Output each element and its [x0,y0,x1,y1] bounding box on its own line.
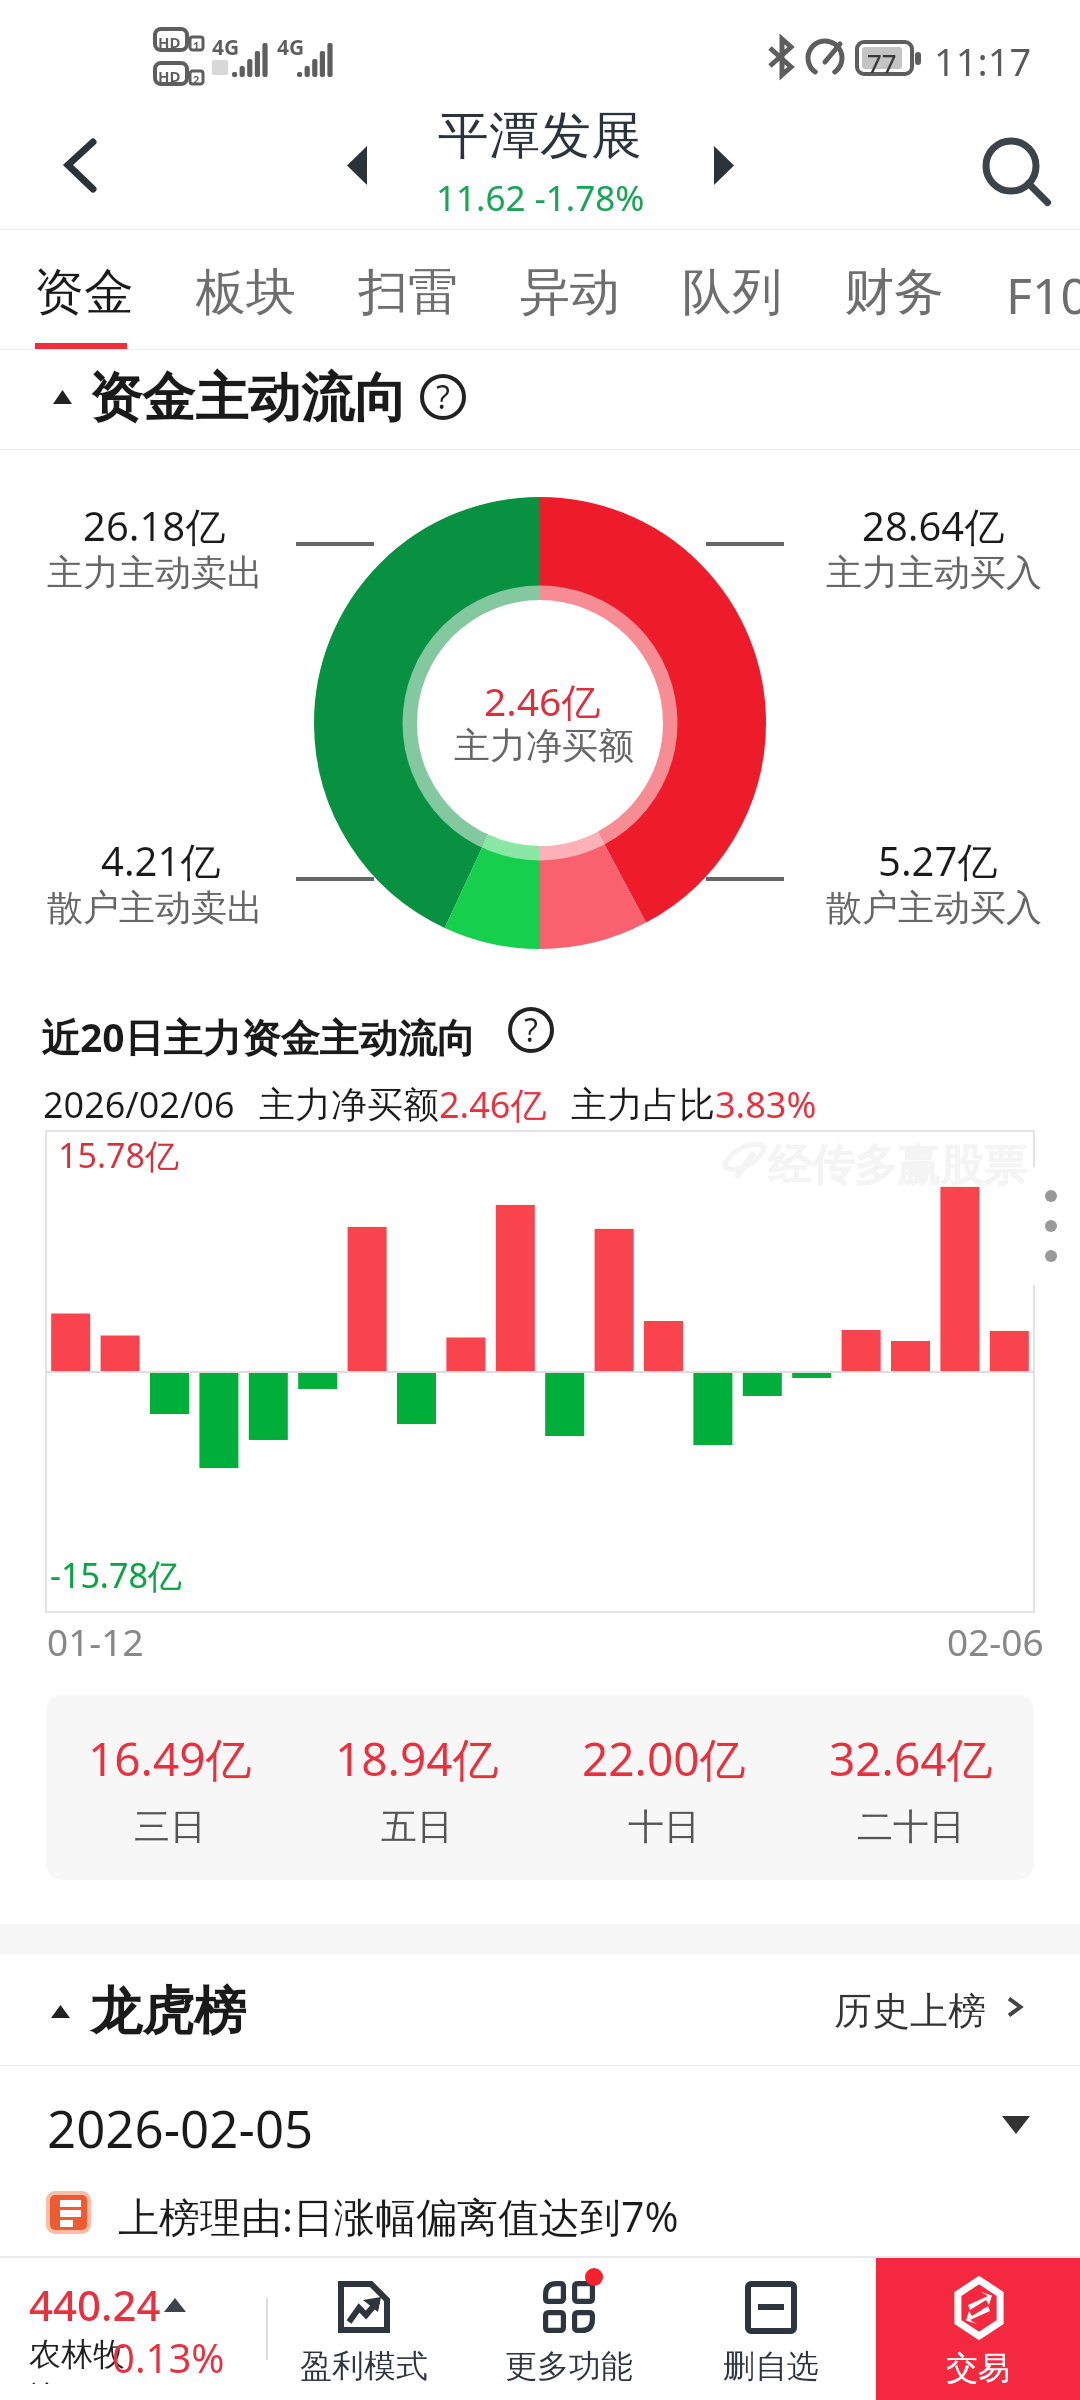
button[interactable]: 16.49亿 [46,1727,293,1849]
button[interactable]: 资金主动流向 [0,351,1080,450]
staticText: 散户主动买入 [826,885,1042,930]
button[interactable]: 盈利模式 [290,2258,486,2400]
staticText: 2 [193,72,200,87]
staticText: 440.24 [29,2276,161,2333]
staticText: 板块 [196,261,296,324]
staticText: 更多功能 [471,2346,667,2386]
button[interactable]: 440.24 [0,2258,250,2400]
button[interactable]: 资金 [34,230,144,350]
button[interactable]: 32.64亿 [787,1727,1034,1849]
staticText: 扫雷 [358,261,458,324]
button[interactable]: 更多功能 [486,2258,682,2400]
staticText: 平潭发展 [438,104,642,168]
staticText: 0.13% [112,2330,225,2384]
staticText: 5.27亿 [878,833,998,888]
button[interactable]: 板块 [196,230,306,350]
staticText: 删自选 [673,2346,869,2386]
staticText: 01-12 [47,1616,144,1666]
staticText: 02-06 [947,1616,1044,1666]
button[interactable]: Help [420,374,466,420]
staticText: 主力主动买入 [826,550,1042,595]
staticText: 历史上榜 [834,1987,986,2035]
staticText: 五日 [381,1804,453,1849]
button[interactable]: More options [1024,1166,1080,1286]
staticText: 交易 [876,2348,1080,2388]
staticText: 1 [193,38,200,53]
staticText: 主力净买额 [259,1082,439,1127]
button[interactable]: Help [508,1007,554,1053]
staticText: ? [524,1008,538,1052]
button[interactable]: Back [36,122,124,210]
staticText: 近20日主力资金主动流向 [41,1010,476,1063]
staticText: 资金 [34,261,134,324]
staticText: 22.00亿 [582,1727,746,1790]
staticText: 32.64亿 [829,1727,993,1790]
button[interactable]: 22.00亿 [540,1727,787,1849]
staticText: 资金主动流向 [89,365,407,432]
button[interactable]: F10 [1006,230,1080,350]
staticText: 16.49亿 [88,1727,252,1790]
staticText: 26.18亿 [83,498,226,553]
staticText: 龙虎榜 [90,1979,246,2045]
button[interactable]: 18.94亿 [293,1727,540,1849]
staticText: 异动 [520,261,620,324]
staticText: 盈利模式 [266,2346,462,2386]
staticText: 主力占比 [571,1082,715,1127]
staticText: 2.46亿 [484,674,601,727]
staticText: 28.64亿 [862,498,1005,553]
button[interactable]: Previous stock [327,122,387,182]
staticText: 4G [277,33,305,62]
staticText: 2026-02-05 [47,2093,314,2162]
staticText: 二十日 [857,1804,965,1849]
button[interactable]: 队列 [682,230,792,350]
staticText: 18.94亿 [335,1727,499,1790]
staticText: 农林牧渔 [29,2334,125,2384]
button[interactable]: 财务 [844,230,954,350]
button[interactable]: Search [963,114,1059,210]
staticText: HD [158,32,181,52]
staticText: HD [158,66,181,86]
staticText: 77 [867,45,897,80]
staticText: ? [436,375,450,419]
button[interactable]: 龙虎榜 [0,1954,1080,2066]
staticText: 3.83% [715,1080,817,1129]
button[interactable]: 交易 [876,2258,1080,2400]
staticText: 主力主动卖出 [47,550,263,595]
staticText: 2.46亿 [439,1080,547,1129]
button[interactable]: 删自选 [682,2258,878,2400]
staticText: 三日 [134,1804,206,1849]
staticText: 上榜理由:日涨幅偏离值达到7% [118,2188,679,2244]
staticText: 11.62 -1.78% [436,174,645,222]
button[interactable]: 扫雷 [358,230,468,350]
staticText: 11:17 [934,35,1032,87]
staticText: 散户主动卖出 [47,885,263,930]
staticText: 4G [212,33,240,62]
button[interactable]: 2026-02-05 [0,2066,1080,2176]
staticText: -15.78亿 [50,1552,182,1598]
staticText: 经传多赢股票 [768,1139,1026,1193]
button[interactable]: Next stock [694,122,754,182]
staticText: 2026/02/06 [43,1080,235,1129]
staticText: 队列 [682,261,782,324]
button[interactable]: 异动 [520,230,630,350]
staticText: 十日 [628,1804,700,1849]
staticText: 主力净买额 [454,723,634,768]
staticText: 15.78亿 [58,1132,179,1178]
staticText: 4.21亿 [101,833,221,888]
staticText: F10 [1006,261,1080,329]
staticText: 财务 [844,261,944,324]
